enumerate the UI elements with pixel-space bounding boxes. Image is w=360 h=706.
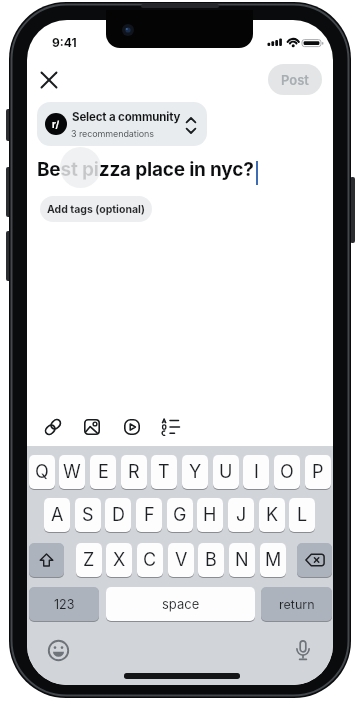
button[interactable]: Q: [29, 455, 55, 489]
staticText: H: [203, 504, 217, 526]
staticText: W: [63, 461, 81, 483]
staticText: D: [112, 504, 125, 526]
staticText: Q: [35, 461, 49, 483]
staticText: space: [162, 596, 200, 612]
staticText: F: [144, 504, 155, 526]
staticText: M: [265, 549, 282, 571]
staticText: V: [175, 549, 188, 571]
button[interactable]: [297, 543, 332, 577]
staticText: I: [254, 461, 259, 483]
staticText: C: [143, 549, 157, 571]
staticText: Best pizza place in nyc?: [37, 158, 254, 181]
button[interactable]: S: [75, 498, 101, 532]
staticText: T: [158, 461, 170, 483]
button[interactable]: V: [168, 543, 194, 577]
button[interactable]: E: [90, 455, 116, 489]
button[interactable]: L: [289, 498, 315, 532]
staticText: R: [128, 461, 140, 483]
staticText: Z: [83, 549, 95, 571]
button[interactable]: D: [105, 498, 131, 532]
staticText: X: [113, 549, 126, 571]
staticText: return: [279, 597, 315, 612]
staticText: O: [280, 461, 294, 483]
button[interactable]: [36, 410, 69, 443]
staticText: Y: [189, 461, 202, 483]
button[interactable]: [288, 635, 318, 666]
staticText: U: [219, 461, 233, 483]
button[interactable]: [153, 410, 187, 443]
button[interactable]: Add tags (optional): [40, 196, 152, 222]
button[interactable]: K: [259, 498, 285, 532]
button[interactable]: R: [121, 455, 147, 489]
button[interactable]: [43, 635, 74, 666]
button[interactable]: B: [198, 543, 224, 577]
button[interactable]: U: [213, 455, 239, 489]
button[interactable]: P: [305, 455, 331, 489]
button[interactable]: 123: [29, 587, 99, 621]
staticText: J: [236, 504, 247, 526]
staticText: Select a community: [72, 110, 181, 124]
staticText: 9:41: [52, 35, 77, 48]
button[interactable]: Y: [182, 455, 208, 489]
staticText: Post: [281, 72, 309, 88]
button[interactable]: [75, 410, 108, 443]
button[interactable]: F: [136, 498, 162, 532]
staticText: N: [235, 549, 249, 571]
staticText: B: [205, 549, 217, 571]
staticText: E: [98, 461, 109, 483]
staticText: Add tags (optional): [47, 203, 146, 216]
button[interactable]: X: [106, 543, 132, 577]
button[interactable]: W: [59, 455, 85, 489]
button[interactable]: J: [228, 498, 254, 532]
button[interactable]: Post: [268, 64, 322, 95]
button[interactable]: A: [44, 498, 70, 532]
button[interactable]: H: [197, 498, 223, 532]
button[interactable]: C: [137, 543, 163, 577]
staticText: G: [173, 504, 187, 526]
button[interactable]: [32, 63, 65, 96]
button[interactable]: space: [106, 587, 255, 621]
button[interactable]: T: [151, 455, 177, 489]
staticText: r/: [52, 119, 60, 130]
button[interactable]: O: [274, 455, 300, 489]
button[interactable]: M: [260, 543, 286, 577]
staticText: K: [266, 504, 279, 526]
button[interactable]: I: [243, 455, 269, 489]
button[interactable]: N: [229, 543, 255, 577]
button[interactable]: G: [167, 498, 193, 532]
staticText: P: [312, 461, 324, 483]
button[interactable]: r/: [37, 102, 207, 146]
staticText: A: [51, 504, 64, 526]
button[interactable]: Z: [76, 543, 102, 577]
staticText: 123: [54, 597, 75, 612]
button[interactable]: return: [261, 587, 332, 621]
staticText: S: [82, 504, 94, 526]
button[interactable]: [29, 543, 64, 577]
button[interactable]: [115, 410, 148, 443]
staticText: L: [297, 504, 308, 526]
staticText: 3 recommendations: [71, 128, 154, 139]
